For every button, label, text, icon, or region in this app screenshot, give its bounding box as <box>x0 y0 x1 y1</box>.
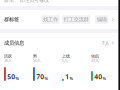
staticText: 打工交流群 <box>64 16 89 23</box>
staticText: 1 <box>65 72 69 81</box>
staticText: 50 <box>7 72 15 81</box>
staticText: 5人 <box>62 58 68 63</box>
staticText: 活跃 <box>4 54 12 59</box>
button[interactable]: 群标签 <box>0 10 120 29</box>
button[interactable]: 找工作 <box>41 15 60 24</box>
staticText: 40 <box>94 72 102 81</box>
staticText: % <box>69 76 73 81</box>
staticText: 7人 <box>101 39 109 47</box>
staticText: 29人 <box>91 58 99 63</box>
staticText: % <box>44 76 48 81</box>
staticText: % <box>102 76 106 81</box>
staticText: 编辑 <box>97 16 107 23</box>
staticText: 群标签 <box>4 16 19 23</box>
staticText: 50人 <box>33 58 41 63</box>
staticText: 90后 <box>91 53 99 59</box>
staticText: 群主、管理员可修改 <box>4 0 49 3</box>
staticText: 找工作 <box>43 16 58 23</box>
staticText: % <box>15 76 19 81</box>
staticText: 男 <box>33 54 37 59</box>
staticText: 成员信息 <box>4 40 24 46</box>
button[interactable]: 打工交流群 <box>62 15 90 24</box>
staticText: 36人 <box>4 58 12 63</box>
staticText: 上线 <box>62 54 70 59</box>
staticText: 70 <box>36 72 44 81</box>
button[interactable]: 成员信息 <box>0 33 120 53</box>
button[interactable]: 编辑 <box>95 15 108 24</box>
